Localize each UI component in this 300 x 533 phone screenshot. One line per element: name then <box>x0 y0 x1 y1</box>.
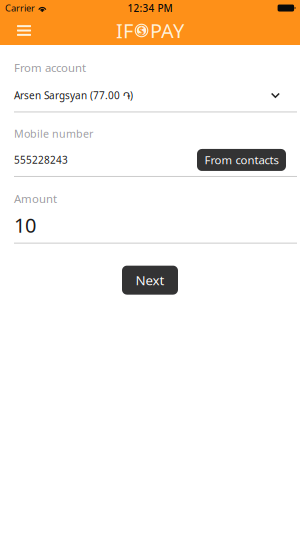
staticText: Amount <box>14 191 57 206</box>
staticText: 555228243 <box>14 153 68 167</box>
button[interactable]: Next <box>122 266 178 295</box>
staticText: Next <box>135 271 164 289</box>
staticText: 12:34 PM <box>127 1 172 15</box>
staticText: Arsen Sargsyan (77.00 ֏) <box>14 89 133 102</box>
staticText: Mobile number <box>14 126 93 141</box>
button[interactable]: From contacts <box>197 149 286 171</box>
staticText: From contacts <box>204 152 278 168</box>
staticText: Carrier <box>5 2 35 14</box>
staticText: IF <box>116 17 133 44</box>
button[interactable]: Arsen Sargsyan (77.00 ֏) <box>14 88 286 102</box>
button[interactable]: Menu <box>0 16 48 45</box>
staticText: $ <box>138 24 144 37</box>
staticText: PAY <box>150 17 184 44</box>
staticText: From account <box>14 60 86 75</box>
staticText: 10 <box>14 211 36 239</box>
